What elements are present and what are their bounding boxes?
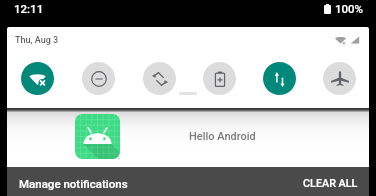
button[interactable]: Hello Android — [7, 112, 369, 167]
staticText: CLEAR ALL — [303, 177, 358, 190]
staticText: 12:11 — [14, 2, 44, 15]
button[interactable]: CLEAR ALL — [291, 167, 369, 196]
button[interactable]: Battery saver — [189, 60, 249, 96]
button[interactable]: Airplane mode — [309, 60, 369, 96]
staticText: Manage notifications — [19, 177, 128, 190]
button[interactable]: Mobile data — [249, 60, 309, 96]
staticText: Hello Android — [189, 130, 256, 143]
button[interactable]: Auto rotate — [129, 60, 189, 96]
button[interactable]: Manage notifications — [7, 167, 140, 196]
staticText: Thu, Aug 3 — [15, 35, 59, 46]
button[interactable]: Do not disturb — [68, 60, 129, 96]
button[interactable]: Wi-Fi off — [7, 60, 68, 96]
staticText: 100% — [335, 2, 364, 15]
